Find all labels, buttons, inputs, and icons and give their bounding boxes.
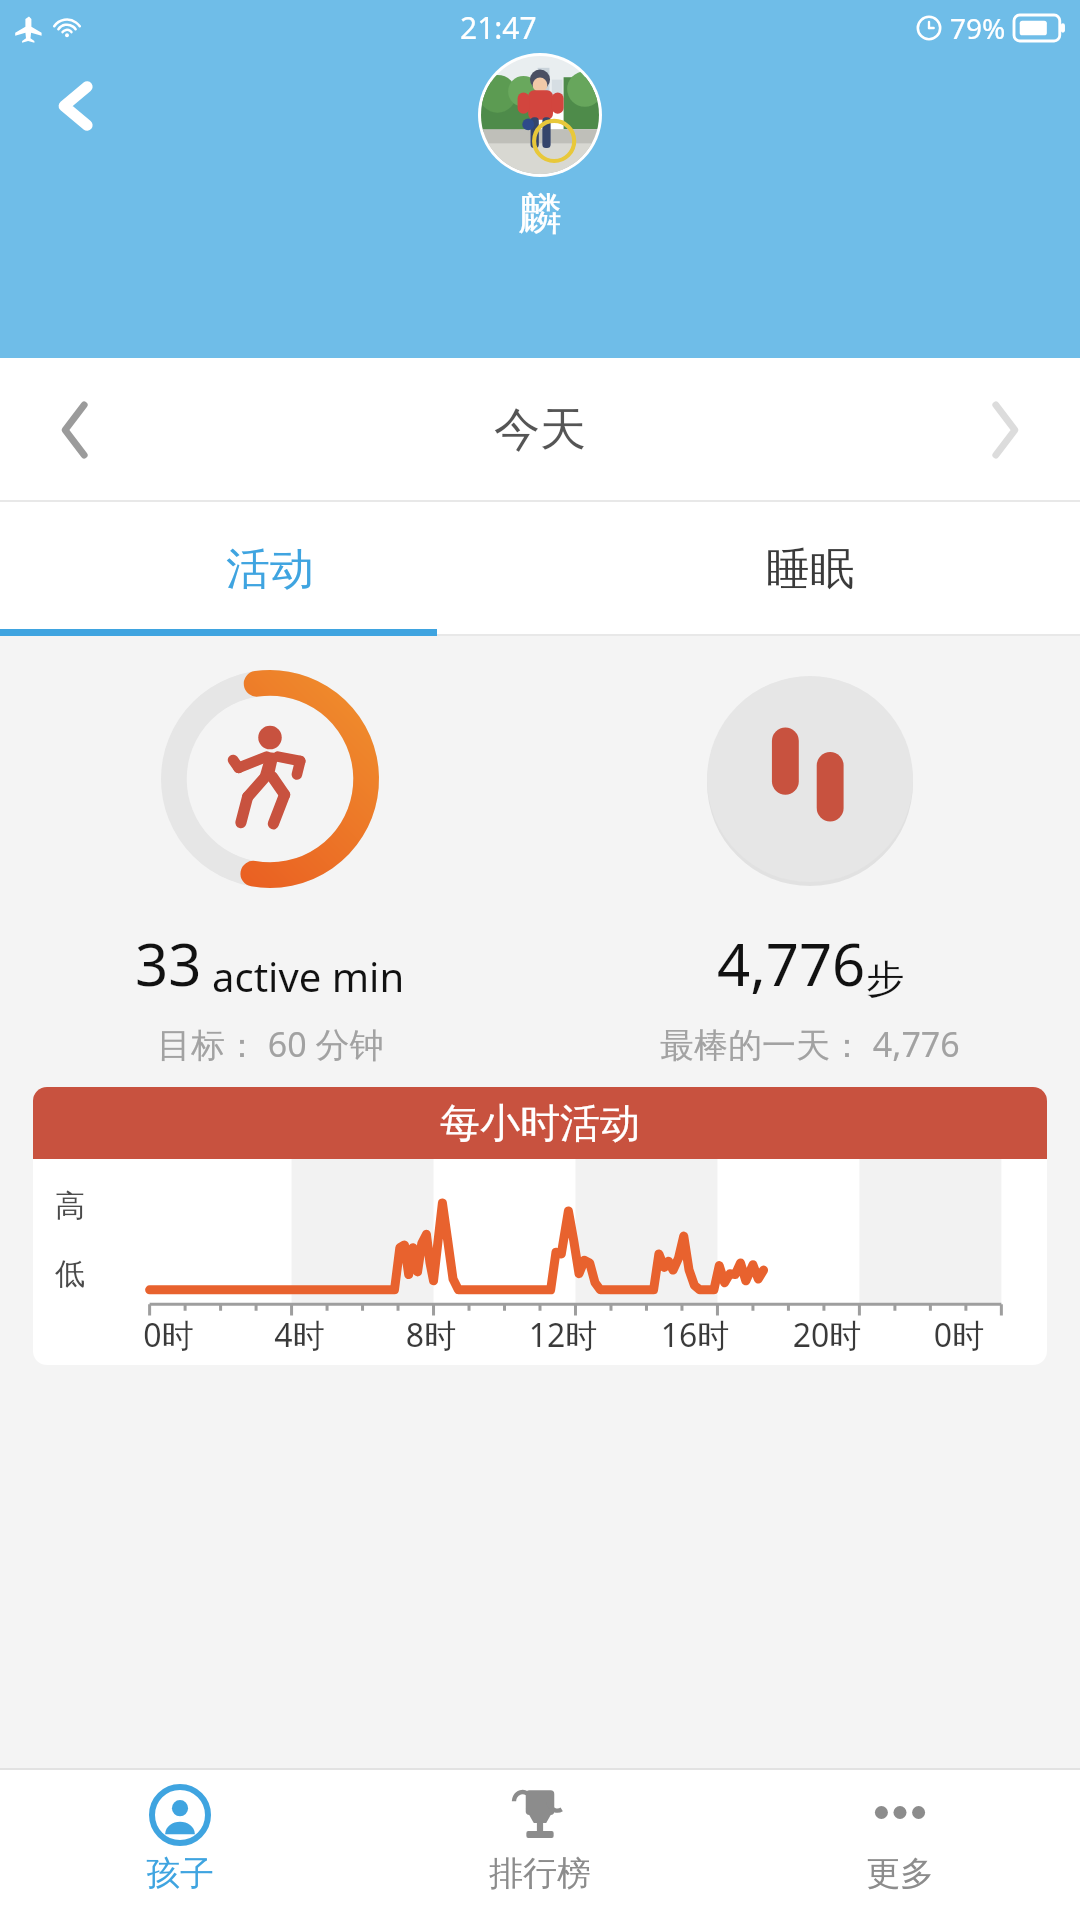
- button[interactable]: 睡眠: [540, 502, 1080, 636]
- staticText: 低: [55, 1255, 85, 1293]
- staticText: 孩子: [146, 1852, 214, 1895]
- button[interactable]: Previous day: [0, 358, 150, 502]
- staticText: 步: [866, 955, 904, 1003]
- staticText: 最棒的一天： 4,776: [660, 1021, 960, 1067]
- staticText: 8时: [365, 1313, 497, 1357]
- button[interactable]: 排行榜: [360, 1770, 720, 1920]
- staticText: 麟: [518, 187, 562, 242]
- button[interactable]: 每小时活动: [33, 1087, 1047, 1365]
- staticText: 4时: [234, 1313, 365, 1357]
- staticText: 33: [135, 924, 202, 1003]
- staticText: 79%: [950, 9, 1006, 47]
- staticText: 目标： 60 分钟: [157, 1021, 384, 1067]
- staticText: 活动: [226, 542, 314, 597]
- button[interactable]: 更多: [720, 1770, 1080, 1920]
- button[interactable]: Next day: [930, 358, 1080, 502]
- staticText: 4,776: [717, 924, 866, 1003]
- button[interactable]: 活动: [0, 502, 540, 636]
- staticText: active min: [212, 949, 405, 1003]
- staticText: 12时: [497, 1313, 629, 1357]
- staticText: 21:47: [460, 7, 537, 48]
- staticText: 睡眠: [766, 542, 854, 597]
- staticText: 排行榜: [489, 1852, 591, 1895]
- staticText: 16时: [629, 1313, 761, 1357]
- staticText: 更多: [866, 1852, 934, 1895]
- button[interactable]: Back: [46, 75, 108, 137]
- staticText: 今天: [494, 401, 586, 459]
- button[interactable]: 孩子: [0, 1770, 360, 1920]
- staticText: 每小时活动: [440, 1098, 640, 1148]
- staticText: 高: [55, 1187, 85, 1225]
- staticText: 0时: [103, 1313, 234, 1357]
- staticText: 0时: [893, 1313, 1025, 1357]
- staticText: 20时: [761, 1313, 893, 1357]
- button[interactable]: Profile photo: [481, 56, 599, 174]
